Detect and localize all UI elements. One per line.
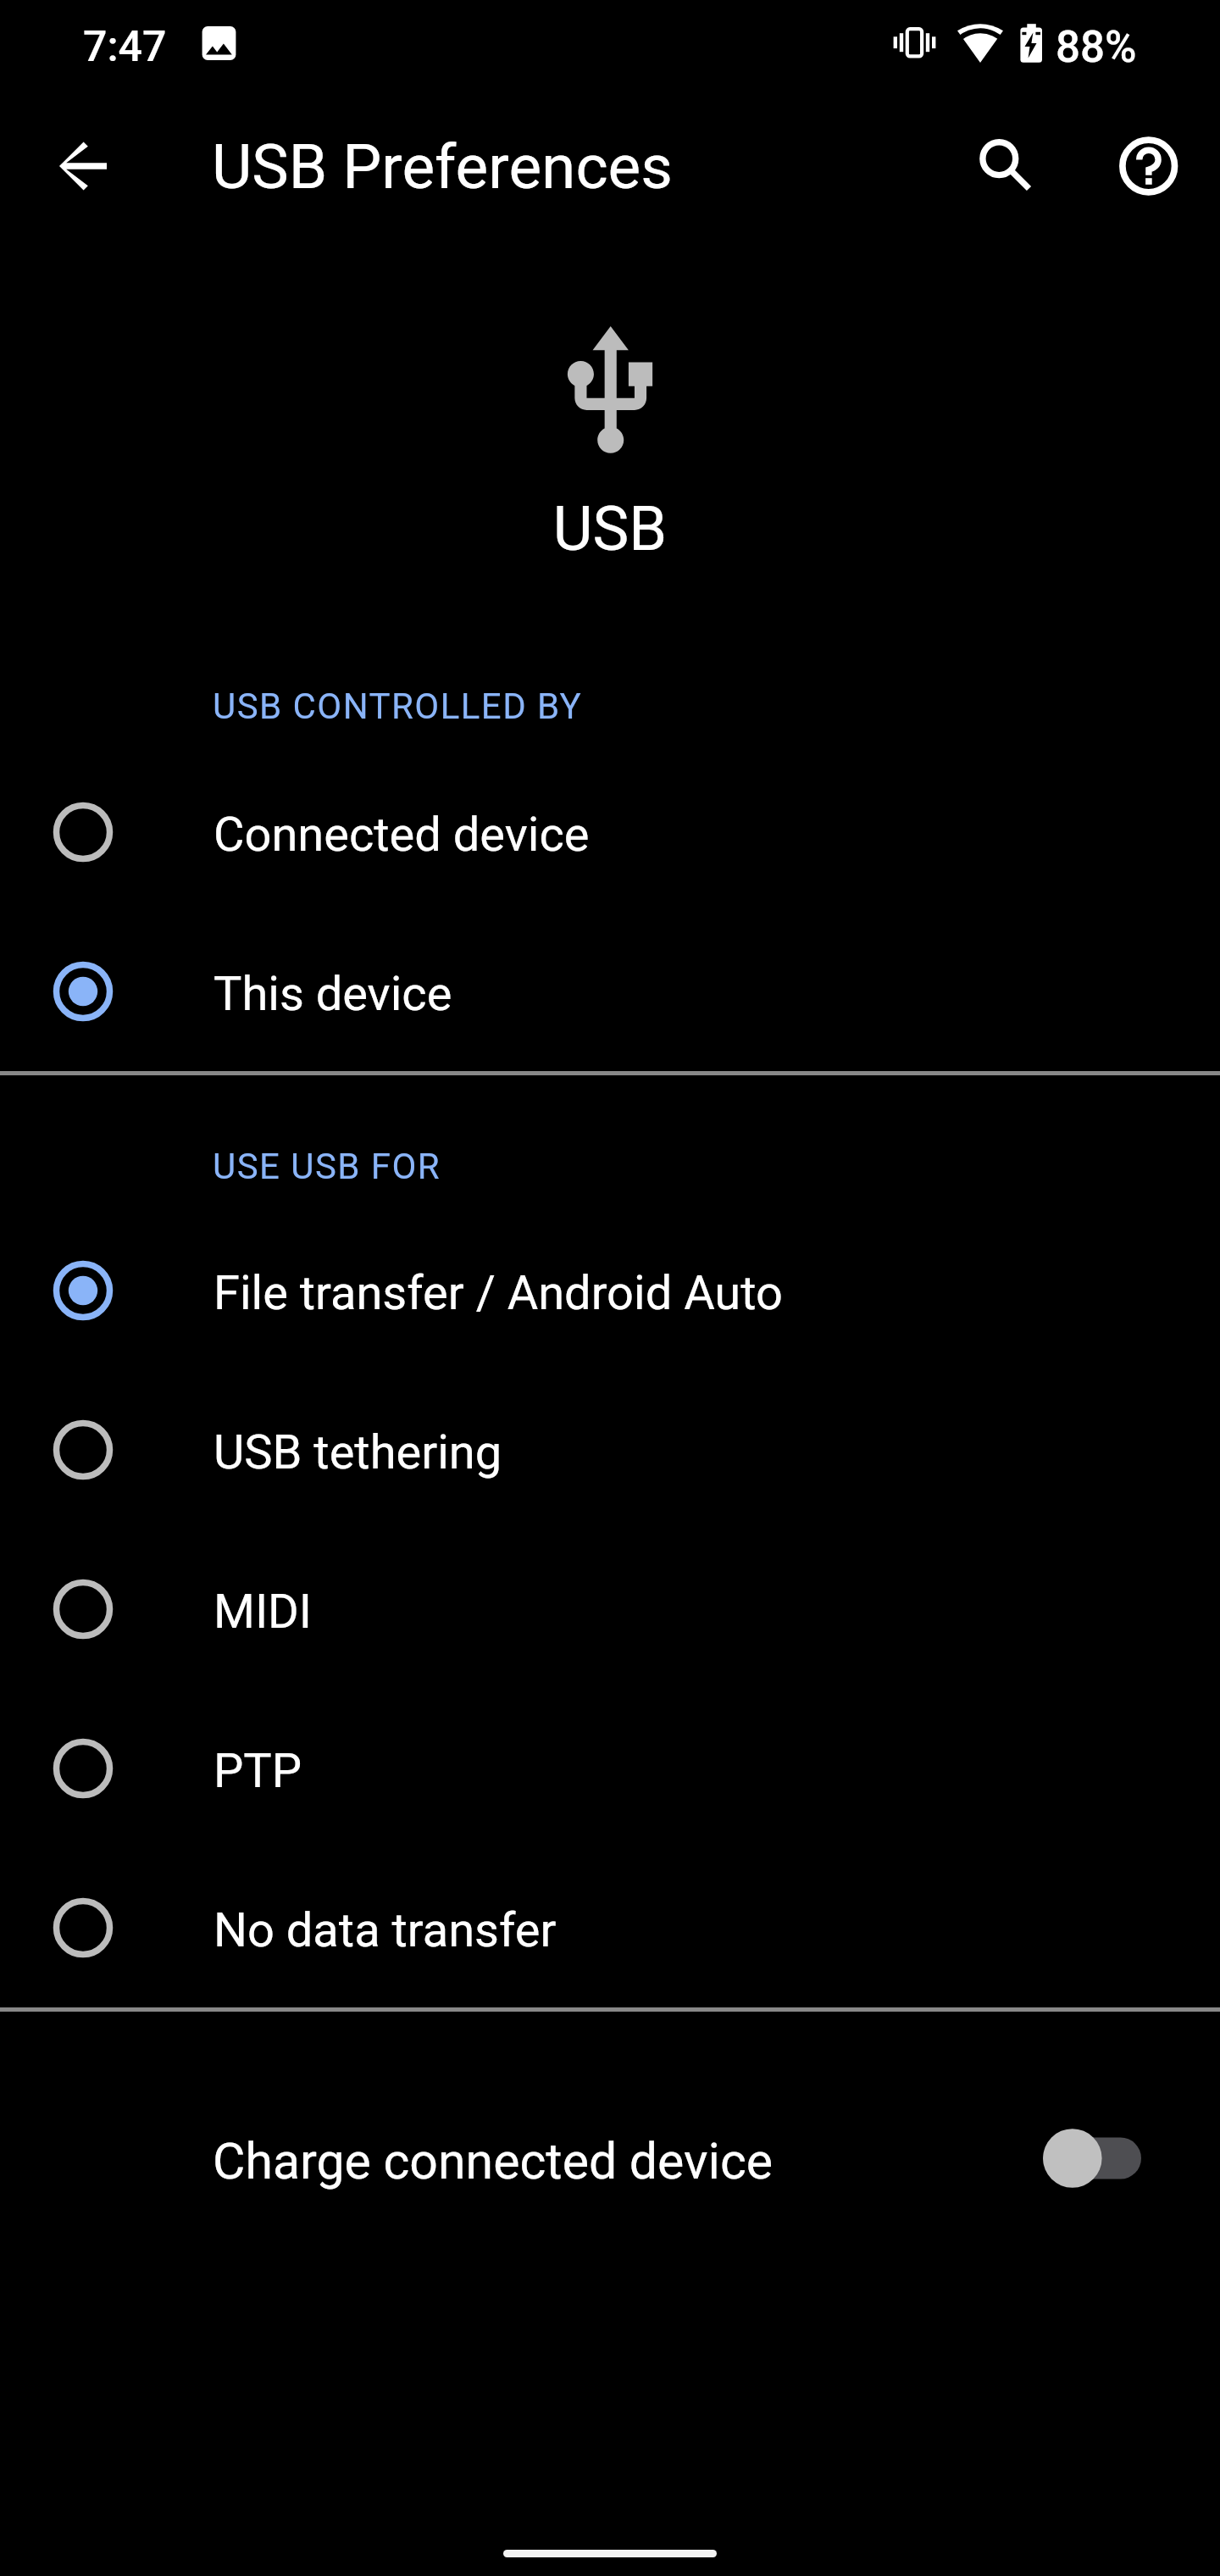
button[interactable]: Connected device [0,752,1220,912]
button[interactable]: Charge connected device, off [1043,2129,1141,2188]
button[interactable]: Help [1113,130,1184,202]
button[interactable]: File transfer / Android Auto [0,1211,1220,1370]
staticText: Connected device [213,807,590,863]
staticText: USB tethering [213,1424,502,1480]
button[interactable]: USB tethering [0,1370,1220,1529]
button[interactable]: Search [969,130,1040,202]
button[interactable]: PTP [0,1689,1220,1848]
staticText: File transfer / Android Auto [213,1265,783,1321]
button[interactable]: No data transfer [0,1848,1220,2007]
staticText: USB [0,493,1220,564]
staticText: USB Preferences [212,130,674,203]
staticText: 88% [1056,22,1137,73]
staticText: PTP [213,1743,302,1799]
staticText: USE USB FOR [213,1146,441,1187]
button[interactable]: MIDI [0,1529,1220,1689]
button[interactable]: This device [0,912,1220,1071]
button[interactable]: Charge connected device [0,2074,1220,2243]
staticText: 7:47 [83,22,167,72]
staticText: No data transfer [213,1902,557,1958]
button[interactable]: Navigate up [47,130,119,202]
staticText: This device [213,966,452,1022]
staticText: USB CONTROLLED BY [213,686,583,727]
staticText: MIDI [213,1584,313,1640]
staticText: Charge connected device [213,2132,774,2190]
